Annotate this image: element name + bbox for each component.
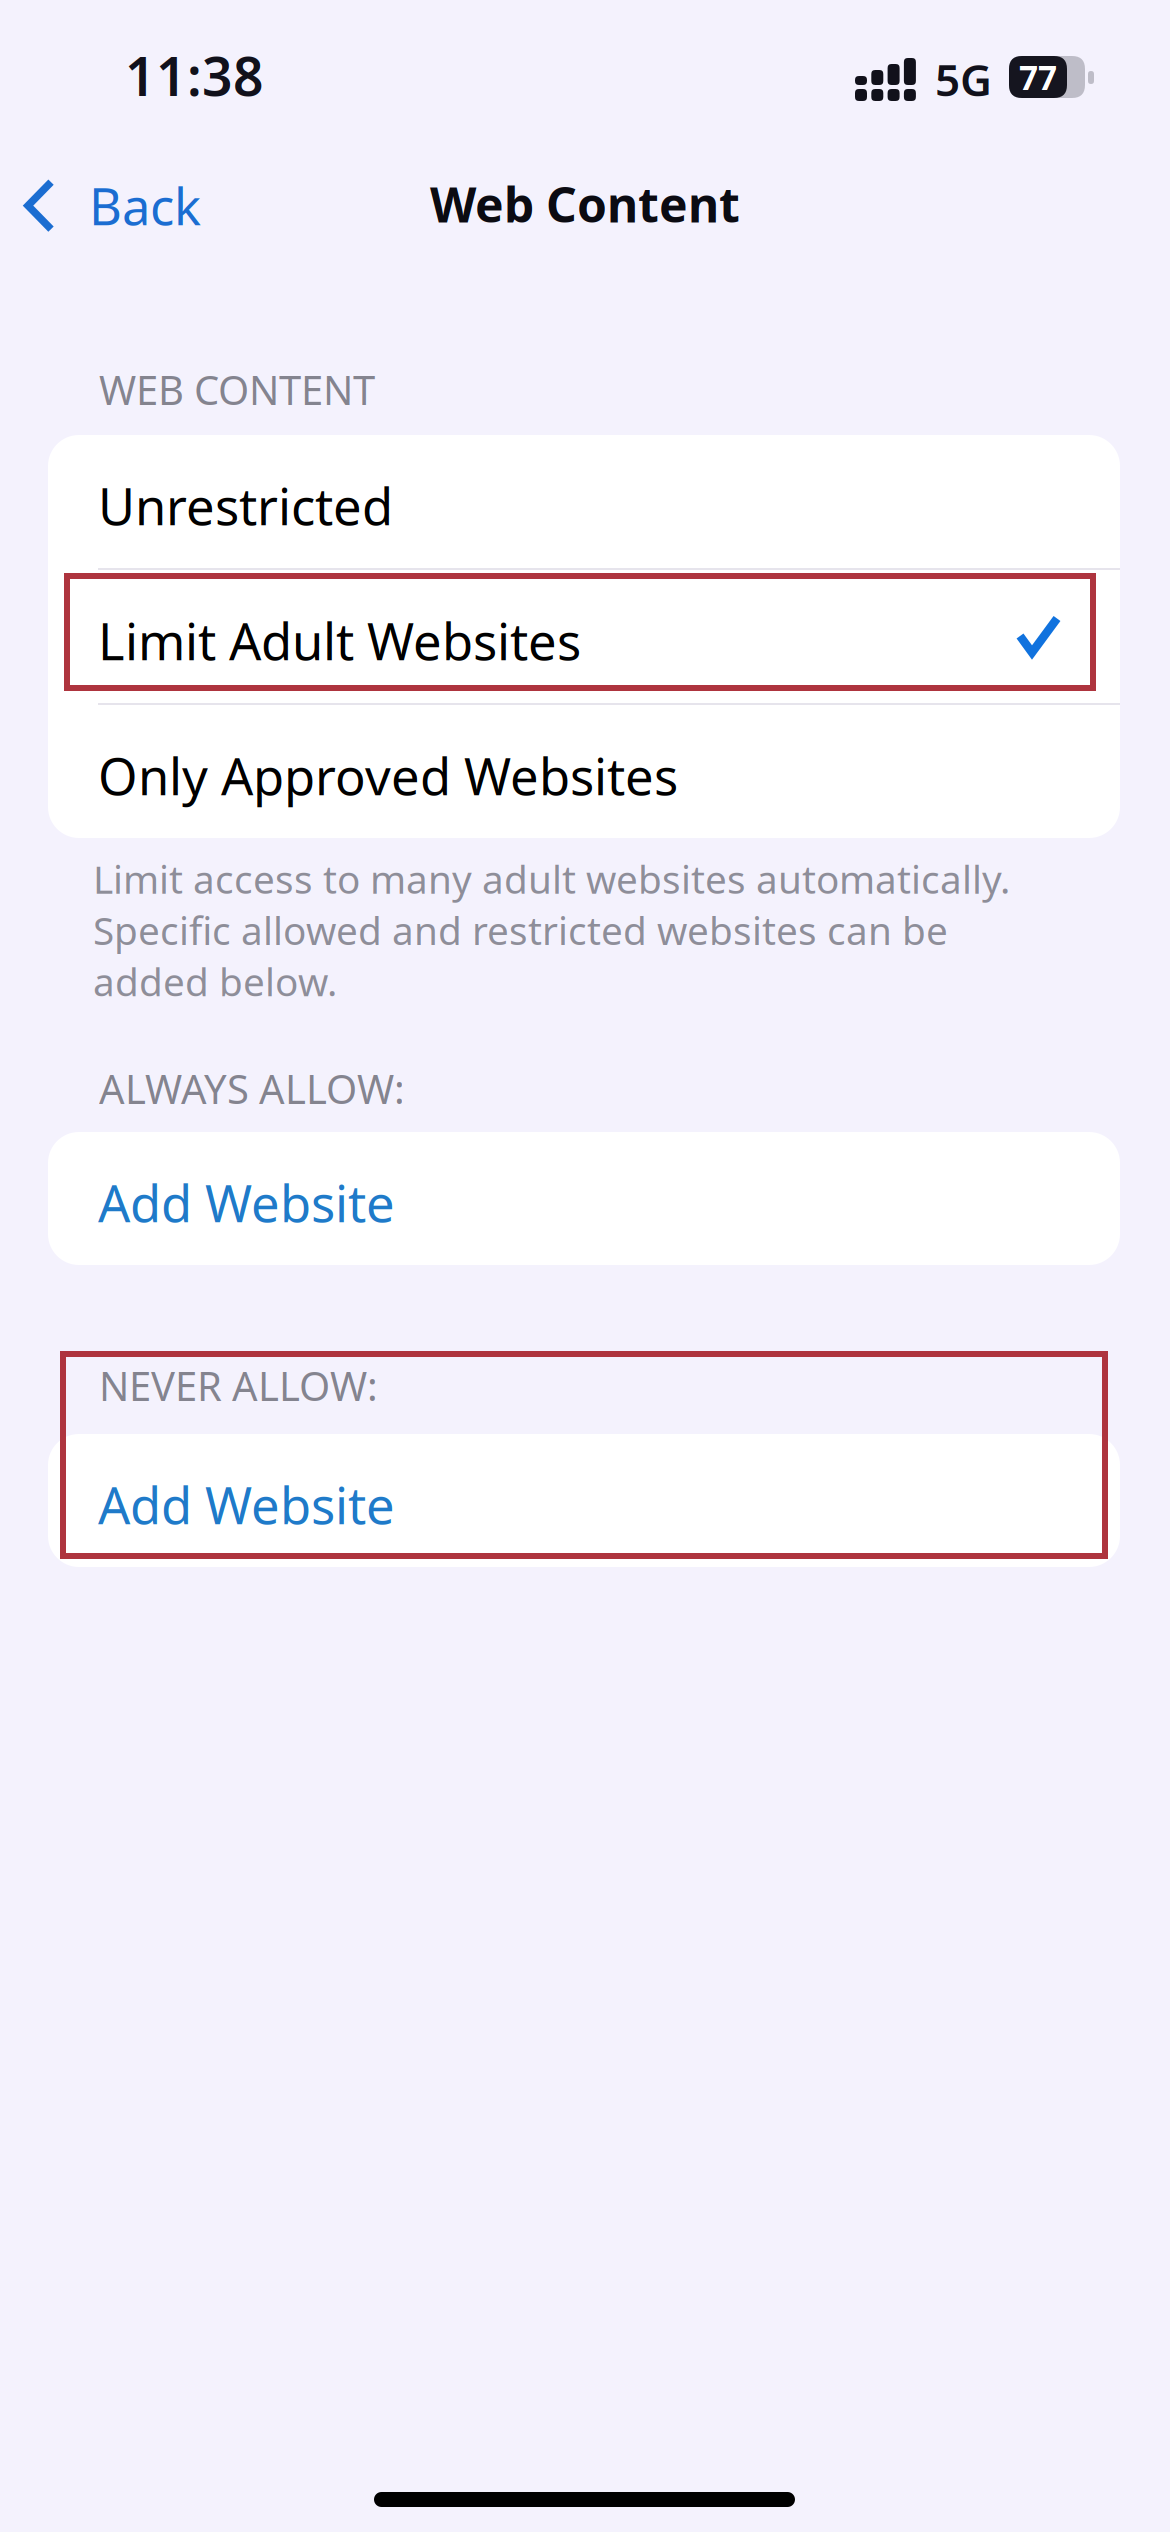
staticText: 77 bbox=[1019, 55, 1057, 99]
button[interactable]: Back bbox=[0, 156, 227, 255]
staticText: Only Approved Websites bbox=[98, 742, 678, 809]
staticText: Limit access to many adult websites auto… bbox=[93, 853, 1010, 1007]
button[interactable]: Unrestricted bbox=[48, 435, 1120, 568]
staticText: Web Content bbox=[430, 172, 740, 236]
button[interactable]: Only Approved Websites bbox=[48, 705, 1120, 838]
staticText: Back bbox=[89, 172, 201, 239]
button[interactable]: Add Website bbox=[48, 1434, 1120, 1567]
button[interactable]: Add Website bbox=[48, 1132, 1120, 1265]
staticText: Limit Adult Websites bbox=[98, 607, 581, 674]
staticText: Unrestricted bbox=[98, 472, 393, 539]
staticText: NEVER ALLOW: bbox=[99, 1359, 378, 1412]
staticText: Add Website bbox=[98, 1169, 395, 1236]
staticText: WEB CONTENT bbox=[99, 363, 375, 416]
staticText: ALWAYS ALLOW: bbox=[99, 1062, 405, 1115]
staticText: 5G bbox=[935, 50, 992, 108]
button[interactable]: Limit Adult Websites bbox=[48, 570, 1120, 703]
staticText: 11:38 bbox=[125, 40, 264, 111]
staticText: Add Website bbox=[98, 1471, 395, 1538]
